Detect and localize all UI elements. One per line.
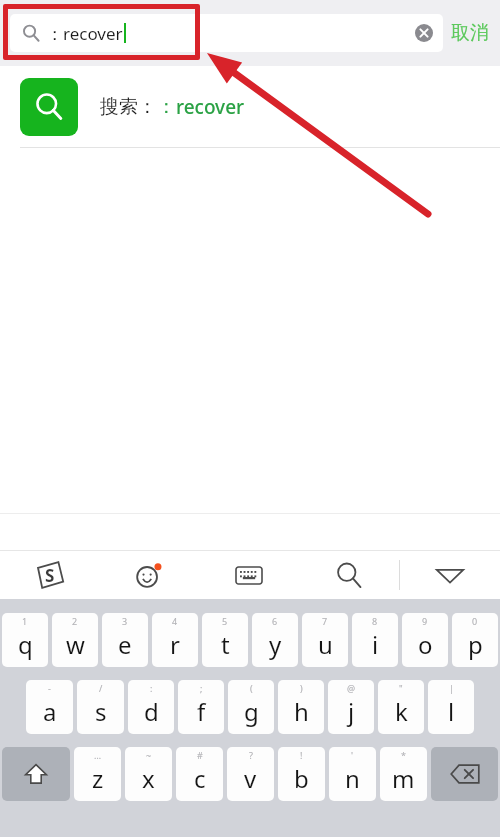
staticText: recover bbox=[176, 94, 245, 120]
staticText: a bbox=[43, 695, 57, 728]
staticText: z bbox=[92, 762, 104, 795]
staticText: ' bbox=[351, 749, 354, 761]
button[interactable]: Clear text bbox=[415, 24, 433, 42]
button[interactable]: ' bbox=[329, 747, 376, 801]
button[interactable]: ( bbox=[228, 680, 274, 734]
staticText: o bbox=[418, 628, 433, 661]
button[interactable]: ：recover bbox=[10, 14, 443, 52]
button[interactable]: ; bbox=[178, 680, 224, 734]
staticText: - bbox=[48, 682, 51, 694]
staticText: j bbox=[348, 695, 355, 728]
staticText: 9 bbox=[422, 615, 428, 627]
staticText: : bbox=[150, 682, 153, 694]
staticText: r bbox=[170, 628, 180, 661]
button[interactable]: Search bbox=[299, 551, 399, 599]
button[interactable]: " bbox=[378, 680, 424, 734]
button[interactable]: Sogou input bbox=[0, 551, 99, 599]
staticText: 1 bbox=[22, 615, 28, 627]
staticText: q bbox=[18, 628, 33, 661]
button[interactable]: Emoji bbox=[99, 551, 199, 599]
staticText: * bbox=[401, 749, 406, 761]
button[interactable]: @ bbox=[328, 680, 374, 734]
staticText: 7 bbox=[322, 615, 328, 627]
button[interactable]: 4 bbox=[152, 613, 198, 667]
button[interactable]: 7 bbox=[302, 613, 348, 667]
button[interactable]: | bbox=[428, 680, 474, 734]
button[interactable]: 2 bbox=[52, 613, 98, 667]
staticText: | bbox=[449, 682, 454, 694]
staticText: 6 bbox=[272, 615, 278, 627]
button[interactable]: 取消 bbox=[451, 21, 489, 45]
staticText: n bbox=[345, 762, 360, 795]
staticText: / bbox=[99, 682, 103, 694]
staticText: @ bbox=[347, 682, 356, 694]
staticText: u bbox=[318, 628, 333, 661]
staticText: 4 bbox=[172, 615, 178, 627]
staticText: b bbox=[294, 762, 309, 795]
staticText: y bbox=[269, 628, 282, 661]
staticText: … bbox=[94, 749, 102, 761]
button[interactable]: 搜索： bbox=[20, 66, 500, 148]
button[interactable]: Backspace bbox=[431, 747, 498, 801]
staticText: 取消 bbox=[451, 21, 489, 45]
button[interactable]: 9 bbox=[402, 613, 448, 667]
staticText: s bbox=[95, 695, 107, 728]
staticText: ~ bbox=[146, 749, 152, 761]
button[interactable]: ~ bbox=[125, 747, 172, 801]
staticText: ： bbox=[157, 95, 176, 119]
button[interactable]: 0 bbox=[452, 613, 498, 667]
staticText: ( bbox=[250, 682, 253, 694]
staticText: c bbox=[194, 762, 206, 795]
staticText: ：recover bbox=[46, 22, 123, 45]
staticText: ! bbox=[300, 749, 303, 761]
staticText: 搜索： bbox=[100, 95, 157, 119]
staticText: f bbox=[197, 695, 206, 728]
staticText: h bbox=[294, 695, 309, 728]
button[interactable]: - bbox=[26, 680, 73, 734]
button[interactable]: ! bbox=[278, 747, 325, 801]
button[interactable]: … bbox=[74, 747, 121, 801]
button[interactable]: * bbox=[380, 747, 427, 801]
staticText: 0 bbox=[472, 615, 478, 627]
staticText: m bbox=[392, 762, 415, 795]
staticText: i bbox=[372, 628, 379, 661]
staticText: k bbox=[395, 695, 408, 728]
staticText: ) bbox=[300, 682, 303, 694]
staticText: g bbox=[244, 695, 259, 728]
button[interactable]: Hide keyboard bbox=[400, 551, 500, 599]
staticText: l bbox=[448, 695, 455, 728]
button[interactable]: Shift bbox=[2, 747, 70, 801]
staticText: " bbox=[399, 682, 403, 694]
staticText: 2 bbox=[72, 615, 78, 627]
button[interactable]: 5 bbox=[202, 613, 248, 667]
button[interactable]: ) bbox=[278, 680, 324, 734]
staticText: w bbox=[66, 628, 85, 661]
button[interactable]: / bbox=[77, 680, 124, 734]
staticText: S bbox=[45, 564, 55, 587]
staticText: v bbox=[244, 762, 257, 795]
button[interactable]: 3 bbox=[102, 613, 148, 667]
staticText: t bbox=[221, 628, 230, 661]
staticText: 8 bbox=[372, 615, 378, 627]
button[interactable]: ? bbox=[227, 747, 274, 801]
staticText: # bbox=[197, 749, 203, 761]
staticText: p bbox=[468, 628, 483, 661]
button[interactable]: 8 bbox=[352, 613, 398, 667]
staticText: 3 bbox=[122, 615, 128, 627]
button[interactable]: # bbox=[176, 747, 223, 801]
staticText: ? bbox=[249, 749, 253, 761]
button[interactable]: : bbox=[128, 680, 174, 734]
staticText: e bbox=[118, 628, 132, 661]
staticText: ; bbox=[200, 682, 203, 694]
staticText: d bbox=[144, 695, 159, 728]
button[interactable]: Keyboard layout bbox=[199, 551, 299, 599]
staticText: x bbox=[142, 762, 155, 795]
button[interactable]: 1 bbox=[2, 613, 48, 667]
button[interactable]: 6 bbox=[252, 613, 298, 667]
staticText: 5 bbox=[222, 615, 228, 627]
